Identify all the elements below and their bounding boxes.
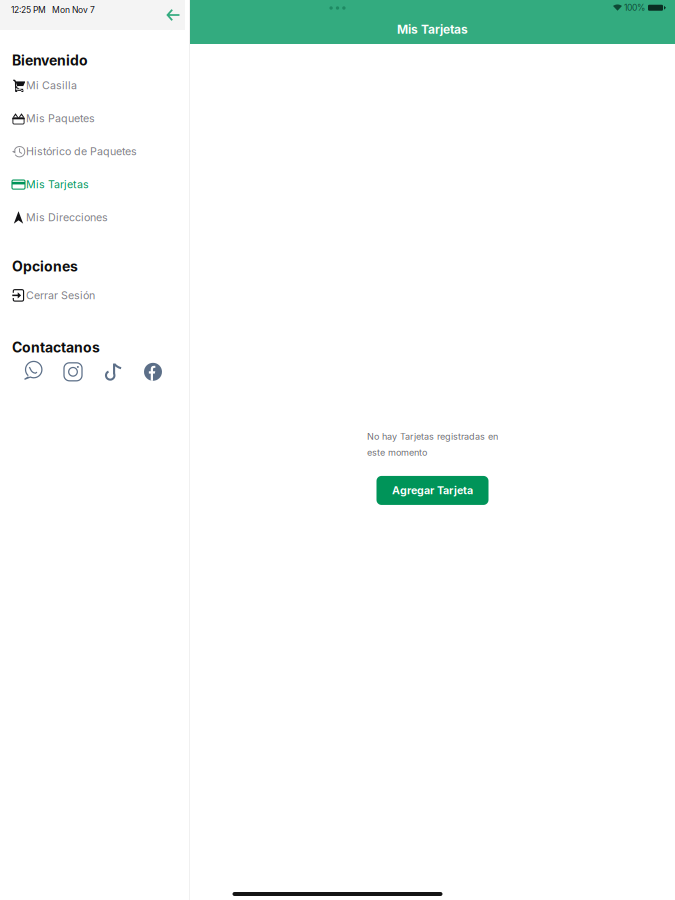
staticText: Bienvenido [12, 52, 88, 69]
button[interactable]: Multitasking controls [317, 2, 357, 14]
staticText: 100% [622, 3, 645, 13]
button[interactable]: Mis Direcciones [12, 201, 190, 234]
button[interactable]: Facebook [133, 356, 173, 381]
button[interactable]: Mis Tarjetas [12, 168, 190, 201]
staticText: Contactanos [12, 339, 100, 356]
staticText: Mis Tarjetas [397, 22, 468, 37]
button[interactable]: Mi Casilla [12, 69, 190, 102]
staticText: Mis Direcciones [26, 211, 108, 224]
button[interactable]: Mis Paquetes [12, 102, 190, 135]
button[interactable]: Cerrar Sesión [12, 275, 190, 312]
staticText: Opciones [12, 258, 78, 275]
staticText: Mis Paquetes [26, 112, 95, 125]
button[interactable]: TikTok [93, 356, 133, 381]
button[interactable]: Agregar Tarjeta [376, 476, 488, 505]
button[interactable]: Back [162, 3, 185, 27]
button[interactable]: Instagram [53, 356, 93, 381]
staticText: No hay Tarjetas registradas en [367, 431, 498, 442]
staticText: 12:25 PM Mon Nov 7 [11, 5, 95, 15]
button[interactable]: WhatsApp [13, 357, 53, 379]
staticText: Mi Casilla [26, 79, 77, 92]
staticText: Agregar Tarjeta [392, 484, 473, 497]
staticText: este momento [367, 447, 427, 458]
staticText: Mis Tarjetas [26, 178, 89, 191]
button[interactable]: Histórico de Paquetes [12, 135, 190, 168]
staticText: Histórico de Paquetes [26, 145, 137, 158]
staticText: Cerrar Sesión [26, 289, 95, 302]
